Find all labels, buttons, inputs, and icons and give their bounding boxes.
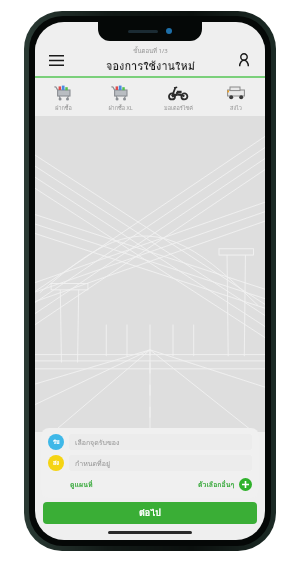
staticText: เลือกจุดรับของ: [75, 437, 120, 448]
button[interactable]: มอเตอร์ไซค์: [149, 78, 207, 116]
button[interactable]: ฝากซื้อ XL: [92, 78, 149, 116]
button[interactable]: ตัวเลือกอื่นๆ: [198, 478, 252, 491]
staticText: กำหนดที่อยู่: [75, 458, 111, 469]
staticText: มอเตอร์ไซค์: [164, 104, 193, 113]
staticText: ฝากซื้อ: [55, 104, 72, 113]
button[interactable]: ส่งไว: [207, 78, 265, 116]
button[interactable]: ฝากซื้อ: [35, 78, 92, 116]
staticText: ฝากซื้อ XL: [108, 104, 133, 113]
staticText: รับ: [53, 438, 60, 447]
button[interactable]: ส่ง: [48, 455, 252, 471]
button[interactable]: ต่อไป: [43, 502, 257, 524]
staticText: ดูแผนที่: [70, 479, 93, 490]
button[interactable]: Menu: [43, 47, 69, 73]
button[interactable]: ดูแผนที่: [68, 477, 95, 492]
staticText: ขั้นตอนที่ 1/3: [133, 46, 168, 56]
button[interactable]: Account: [231, 47, 257, 73]
staticText: ตัวเลือกอื่นๆ: [198, 479, 235, 490]
staticText: จองการใช้งานใหม่: [106, 57, 195, 74]
button[interactable]: รับ: [48, 434, 252, 450]
staticText: ส่งไว: [230, 104, 242, 113]
staticText: ต่อไป: [139, 506, 161, 520]
staticText: ส่ง: [53, 459, 60, 468]
